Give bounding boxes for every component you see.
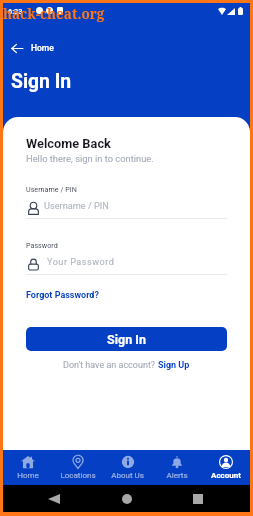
staticText: Account (211, 471, 241, 480)
staticText: Your Password (47, 256, 115, 267)
button[interactable]: Username / PIN (26, 199, 227, 219)
staticText: Forgot Password? (26, 290, 99, 301)
staticText: Password (26, 241, 58, 249)
button[interactable]: About Us (103, 450, 152, 485)
button[interactable]: Home (122, 494, 132, 504)
button[interactable]: Back (11, 34, 250, 62)
staticText: Sign In (107, 332, 146, 347)
button[interactable]: Back (48, 494, 60, 504)
staticText: About Us (111, 471, 144, 480)
staticText: hack-cheat.org (3, 5, 105, 23)
staticText: Home (17, 471, 39, 480)
staticText: Sign In (11, 70, 72, 93)
staticText: Alerts (166, 471, 188, 480)
staticText: Don't have an account? (63, 360, 158, 371)
button[interactable]: Your Password (26, 255, 227, 275)
staticText: Username / PIN (44, 200, 109, 211)
staticText: 6:33 (8, 7, 23, 16)
staticText: Hello there, sign in to continue. (26, 153, 154, 164)
staticText: Username / PIN (26, 185, 77, 193)
other: Back (11, 44, 23, 53)
button[interactable]: Home (3, 450, 53, 485)
staticText: Locations (60, 471, 96, 480)
staticText: Welcome Back (26, 136, 111, 151)
button[interactable]: Alerts (152, 450, 201, 485)
button[interactable]: Forgot Password? (26, 290, 99, 301)
button[interactable]: Locations (53, 450, 103, 485)
staticText: Home (31, 43, 54, 53)
staticText: Sign Up (158, 360, 190, 371)
button[interactable]: Sign In (26, 327, 227, 351)
button[interactable]: Sign Up (158, 360, 190, 371)
button[interactable]: Account (201, 450, 250, 485)
